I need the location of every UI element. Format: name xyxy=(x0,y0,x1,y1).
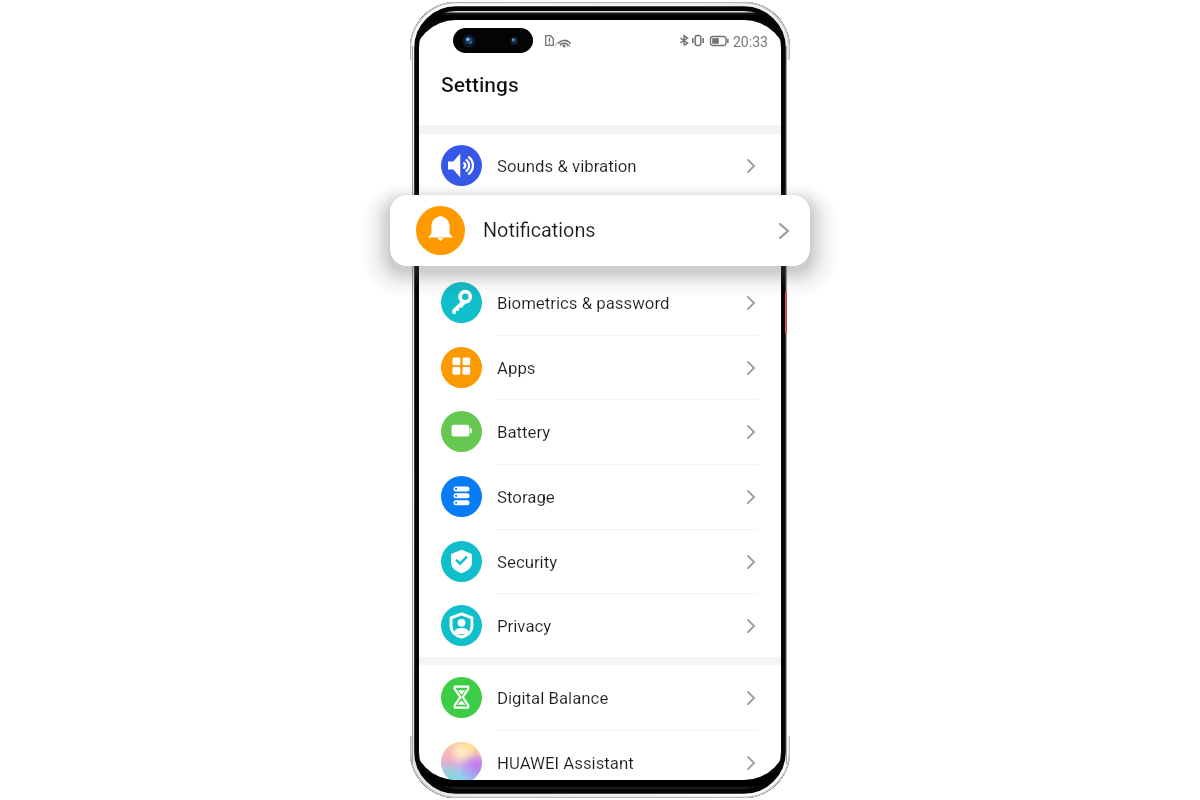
button[interactable]: HUAWEI Assistant xyxy=(413,730,787,780)
staticText: Battery xyxy=(497,422,747,442)
staticText: Sounds & vibration xyxy=(497,156,747,176)
button[interactable]: Sounds & vibration xyxy=(413,133,787,198)
button[interactable]: Security xyxy=(413,529,787,594)
button[interactable]: Digital Balance xyxy=(413,665,787,730)
staticText: Storage xyxy=(497,487,747,507)
staticText: HUAWEI Assistant xyxy=(497,753,747,773)
button[interactable]: Apps xyxy=(413,335,787,400)
staticText: Notifications xyxy=(483,219,779,242)
button[interactable]: Storage xyxy=(413,464,787,529)
staticText: Settings xyxy=(441,73,519,98)
staticText: Security xyxy=(497,552,747,572)
other: Battery xyxy=(747,425,755,439)
button[interactable]: Battery xyxy=(413,399,787,464)
other: Apps xyxy=(747,361,755,375)
other: HUAWEI Assistant xyxy=(747,756,755,770)
staticText: 20:33 xyxy=(733,34,768,50)
button[interactable]: Privacy xyxy=(413,593,787,658)
staticText: Digital Balance xyxy=(497,688,747,708)
other: Digital Balance xyxy=(747,691,755,705)
staticText: Apps xyxy=(497,358,747,378)
button[interactable]: Biometrics & password xyxy=(413,270,787,335)
other: Storage xyxy=(747,490,755,504)
other: Privacy xyxy=(747,619,755,633)
staticText: Biometrics & password xyxy=(497,293,747,313)
other: Sounds & vibration xyxy=(747,159,755,173)
button[interactable]: Notifications xyxy=(390,195,810,266)
other: Security xyxy=(747,555,755,569)
other: Open notification settings xyxy=(779,223,789,239)
staticText: Privacy xyxy=(497,616,747,636)
other: Biometrics & password xyxy=(747,296,755,310)
